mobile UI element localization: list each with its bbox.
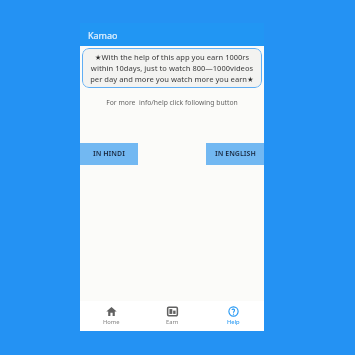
button[interactable]: ★With the help of this app you earn 1000… [86, 52, 258, 84]
button[interactable]: Home [80, 301, 142, 331]
staticText: For more info/help click following butto… [84, 98, 260, 107]
staticText: IN ENGLISH [215, 149, 256, 159]
staticText: IN HINDI [93, 149, 125, 159]
staticText: Help [227, 318, 240, 326]
button[interactable]: Help [203, 301, 264, 331]
staticText: Earn [166, 318, 179, 326]
button[interactable]: IN ENGLISH [206, 143, 264, 165]
staticText: Home [103, 318, 120, 326]
button[interactable]: Earn [142, 301, 203, 331]
button[interactable]: IN HINDI [80, 143, 138, 165]
staticText: ★With the help of this app you earn 1000… [86, 52, 258, 84]
staticText: Kamao [88, 29, 118, 41]
